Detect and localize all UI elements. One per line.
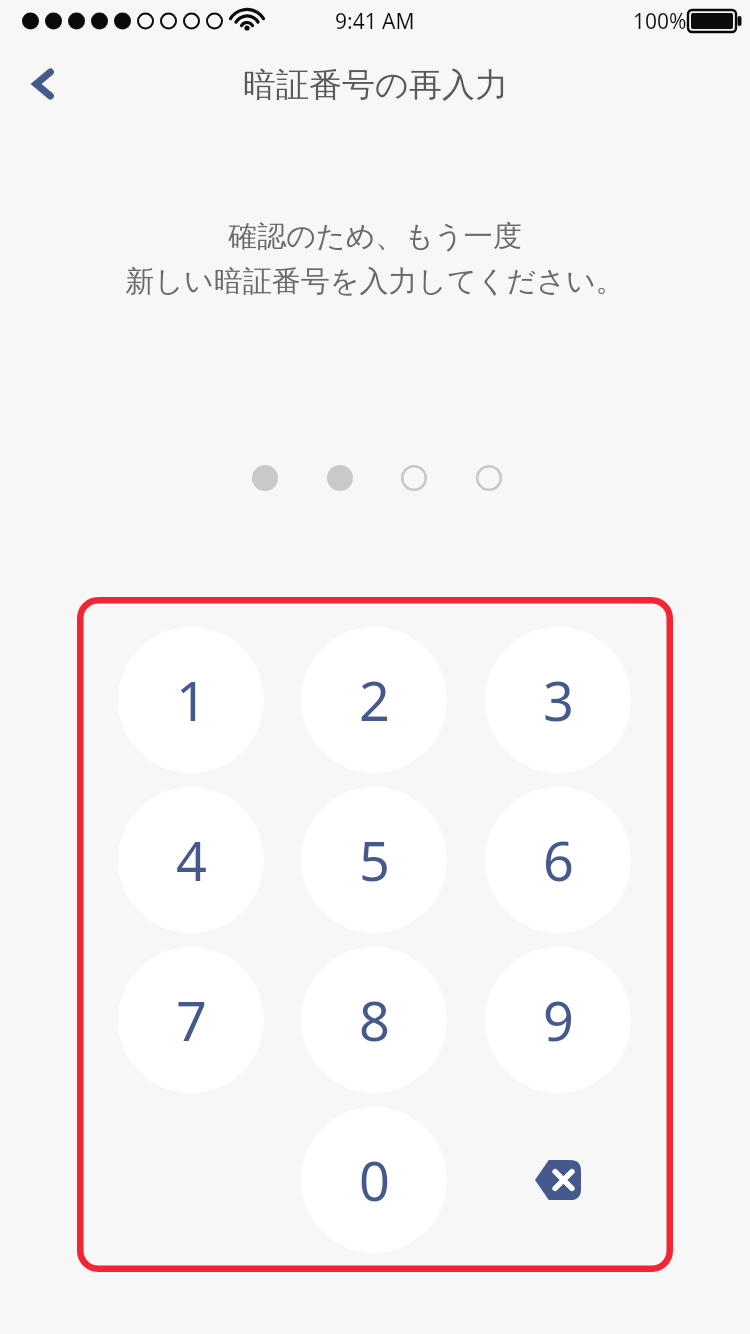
button[interactable]: 2: [301, 627, 447, 773]
staticText: 暗証番号の再入力: [243, 64, 508, 106]
staticText: 100%: [633, 7, 687, 33]
button[interactable]: 5: [301, 787, 447, 933]
staticText: 4: [176, 823, 207, 897]
staticText: 2: [359, 663, 390, 737]
button[interactable]: 1: [118, 627, 264, 773]
button[interactable]: 3: [485, 627, 631, 773]
staticText: 8: [359, 983, 390, 1057]
button[interactable]: 7: [118, 947, 264, 1093]
staticText: 1: [176, 663, 207, 737]
staticText: 9: [543, 983, 574, 1057]
button[interactable]: 8: [301, 947, 447, 1093]
staticText: 9:41 AM: [335, 7, 415, 33]
button[interactable]: Back: [8, 48, 80, 120]
staticText: 7: [176, 983, 207, 1057]
staticText: 確認のため、もう一度 新しい暗証番号を入力してください。: [125, 218, 625, 299]
button[interactable]: 9: [485, 947, 631, 1093]
button[interactable]: 4: [118, 787, 264, 933]
staticText: 3: [543, 663, 574, 737]
staticText: 0: [359, 1143, 390, 1217]
button[interactable]: 0: [301, 1107, 447, 1253]
button[interactable]: Backspace: [485, 1107, 631, 1253]
staticText: 5: [359, 823, 390, 897]
staticText: 6: [543, 823, 574, 897]
button[interactable]: 6: [485, 787, 631, 933]
